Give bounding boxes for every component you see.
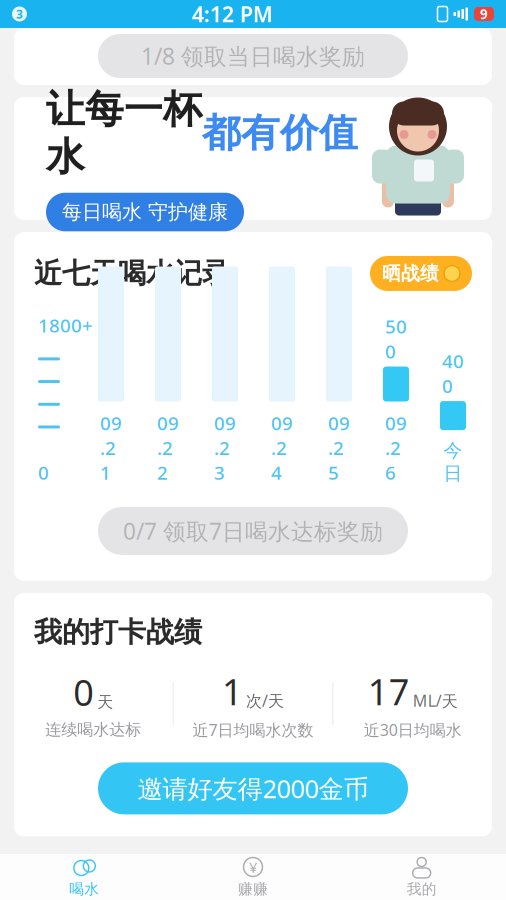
staticText: 1 — [222, 667, 243, 715]
staticText: 09.21 — [100, 411, 122, 485]
staticText: 近7日均喝水次数 — [192, 719, 313, 740]
staticText: 9 — [480, 5, 488, 23]
staticText: 晒战绩 — [382, 262, 439, 285]
button[interactable]: 晒战绩 — [370, 256, 472, 291]
staticText: 1/8 领取当日喝水奖励 — [141, 41, 365, 71]
staticText: 500 — [385, 314, 407, 364]
button[interactable]: 0/7 领取7日喝水达标奖励 — [98, 507, 408, 555]
staticText: 09.24 — [271, 411, 293, 485]
staticText: 连续喝水达标 — [45, 720, 141, 740]
button[interactable]: 1/8 领取当日喝水奖励 — [98, 34, 408, 78]
staticText: 近30日均喝水 — [364, 719, 462, 740]
staticText: 今日 — [443, 439, 462, 485]
staticText: ML/天 — [413, 690, 458, 711]
staticText: 1800+ — [38, 313, 93, 338]
staticText: 赚赚 — [238, 880, 268, 898]
staticText: 400 — [442, 348, 464, 398]
staticText: 都有价值 — [202, 109, 358, 157]
staticText: 17 — [368, 667, 410, 715]
staticText: 近七天喝水记录 — [34, 256, 230, 291]
staticText: 3 — [16, 6, 23, 22]
staticText: 天 — [97, 692, 113, 712]
staticText: 我的 — [407, 880, 437, 898]
button[interactable]: 我的 — [337, 854, 506, 900]
button[interactable]: 喝水 — [0, 854, 169, 900]
staticText: ¥ — [249, 857, 257, 877]
button[interactable]: ¥ — [169, 854, 337, 900]
staticText: 我的打卡战绩 — [34, 615, 202, 649]
staticText: 4:12 PM — [192, 0, 273, 28]
staticText: 09.25 — [328, 411, 350, 485]
staticText: 09.22 — [157, 411, 179, 485]
staticText: 09.23 — [214, 411, 236, 485]
button[interactable]: 邀请好友得2000金币 — [98, 762, 408, 814]
staticText: 每日喝水 守护健康 — [62, 200, 228, 224]
staticText: 让每一杯水 — [46, 86, 202, 181]
staticText: 邀请好友得2000金币 — [137, 772, 368, 805]
staticText: 0/7 领取7日喝水达标奖励 — [123, 516, 383, 546]
staticText: 喝水 — [69, 880, 99, 898]
staticText: 09.26 — [385, 411, 407, 485]
staticText: 0 — [73, 668, 94, 716]
staticText: 次/天 — [246, 690, 284, 711]
staticText: 0 — [38, 460, 49, 485]
